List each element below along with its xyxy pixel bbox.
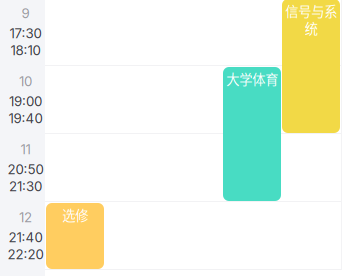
staticText: 20:50 bbox=[7, 161, 43, 177]
staticText: 12 bbox=[19, 209, 32, 225]
button[interactable]: 选修 bbox=[46, 203, 104, 269]
staticText: 19:40 bbox=[8, 110, 42, 126]
button[interactable]: 信号与系统 bbox=[282, 0, 340, 133]
staticText: 18:10 bbox=[10, 42, 40, 58]
staticText: 9 bbox=[21, 5, 29, 21]
staticText: 21:40 bbox=[8, 229, 42, 245]
staticText: 19:00 bbox=[9, 93, 42, 109]
staticText: 信号与系统 bbox=[285, 1, 337, 38]
button[interactable]: 大学体育 bbox=[223, 67, 281, 201]
staticText: 21:30 bbox=[9, 178, 42, 194]
staticText: 选修 bbox=[62, 205, 88, 224]
staticText: 10 bbox=[19, 73, 32, 89]
staticText: 22:20 bbox=[7, 246, 43, 262]
staticText: 17:30 bbox=[9, 25, 41, 41]
staticText: 大学体育 bbox=[226, 69, 278, 88]
staticText: 11 bbox=[20, 141, 30, 157]
